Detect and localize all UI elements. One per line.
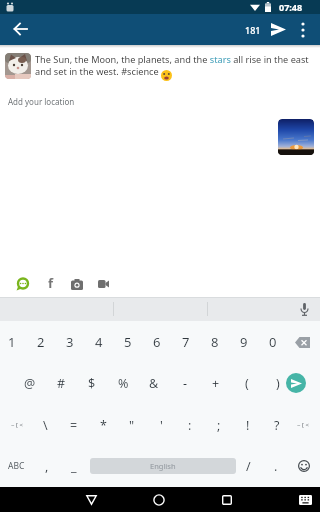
- staticText: ,: [45, 458, 49, 475]
- staticText: ABC: [8, 460, 25, 472]
- staticText: &: [149, 375, 159, 392]
- staticText: _: [71, 458, 77, 475]
- button[interactable]: ~ [ <: [2, 405, 32, 445]
- button[interactable]: [6, 15, 34, 43]
- button[interactable]: [291, 446, 317, 486]
- button[interactable]: [79, 487, 103, 512]
- staticText: =: [70, 417, 78, 434]
- button[interactable]: _: [62, 446, 86, 486]
- button[interactable]: 4: [85, 322, 113, 362]
- button[interactable]: [215, 487, 239, 512]
- staticText: ?: [274, 417, 280, 434]
- button[interactable]: ): [264, 363, 292, 403]
- button[interactable]: [147, 487, 171, 512]
- button[interactable]: 6: [143, 322, 171, 362]
- button[interactable]: 5: [114, 322, 142, 362]
- staticText: 1: [8, 333, 16, 351]
- staticText: -: [183, 375, 188, 392]
- button[interactable]: ABC: [1, 446, 31, 486]
- staticText: ~ [ <: [11, 421, 23, 429]
- button[interactable]: -: [171, 363, 199, 403]
- button[interactable]: #: [47, 363, 75, 403]
- staticText: 181: [245, 24, 261, 36]
- staticText: :: [188, 417, 192, 434]
- staticText: *: [100, 417, 107, 434]
- button[interactable]: ": [119, 405, 145, 445]
- button[interactable]: [288, 322, 316, 362]
- button[interactable]: \: [32, 405, 58, 445]
- button[interactable]: 7: [172, 322, 200, 362]
- button[interactable]: +: [202, 363, 230, 403]
- button[interactable]: ~ [ <: [288, 405, 318, 445]
- button[interactable]: [293, 487, 317, 512]
- staticText: 6: [153, 333, 161, 351]
- staticText: The Sun, the Moon, the planets, and the …: [35, 53, 320, 77]
- button[interactable]: [66, 274, 87, 295]
- button[interactable]: %: [109, 363, 137, 403]
- button[interactable]: ,: [35, 446, 59, 486]
- staticText: .: [274, 458, 278, 475]
- staticText: f: [48, 274, 54, 292]
- button[interactable]: 0: [259, 322, 287, 362]
- button[interactable]: [5, 53, 31, 79]
- staticText: ~ [ <: [297, 421, 309, 429]
- button[interactable]: 1: [0, 322, 26, 362]
- button[interactable]: !: [235, 405, 261, 445]
- staticText: 2: [37, 333, 45, 351]
- button[interactable]: f: [42, 274, 60, 292]
- button[interactable]: 3: [56, 322, 84, 362]
- staticText: +: [212, 375, 220, 392]
- staticText: 9: [240, 333, 248, 351]
- button[interactable]: &: [140, 363, 168, 403]
- button[interactable]: [281, 368, 311, 398]
- button[interactable]: ;: [206, 405, 232, 445]
- staticText: (: [245, 375, 249, 392]
- staticText: ): [276, 375, 280, 392]
- staticText: #: [57, 375, 66, 392]
- staticText: 4: [95, 333, 103, 351]
- button[interactable]: =: [61, 405, 87, 445]
- button[interactable]: ?: [264, 405, 290, 445]
- button[interactable]: $: [78, 363, 106, 403]
- button[interactable]: :: [177, 405, 203, 445]
- staticText: !: [246, 417, 250, 434]
- staticText: English: [150, 461, 176, 471]
- button[interactable]: (: [233, 363, 261, 403]
- button[interactable]: *: [90, 405, 116, 445]
- button[interactable]: [292, 17, 314, 42]
- button[interactable]: [93, 274, 113, 294]
- button[interactable]: [12, 274, 32, 294]
- button[interactable]: 8: [201, 322, 229, 362]
- staticText: ': [160, 417, 163, 434]
- button[interactable]: @: [16, 363, 44, 403]
- staticText: 0: [269, 333, 277, 351]
- staticText: %: [118, 375, 129, 392]
- staticText: 5: [124, 333, 132, 351]
- staticText: Add your location: [8, 96, 75, 107]
- staticText: ": [129, 417, 135, 434]
- button[interactable]: /: [236, 446, 260, 486]
- button[interactable]: [278, 119, 314, 155]
- button[interactable]: .: [264, 446, 288, 486]
- staticText: 3: [66, 333, 74, 351]
- staticText: /: [246, 458, 251, 475]
- button[interactable]: 2: [27, 322, 55, 362]
- button[interactable]: ': [148, 405, 174, 445]
- button[interactable]: [292, 297, 316, 321]
- staticText: @: [24, 375, 36, 392]
- staticText: 8: [211, 333, 219, 351]
- staticText: 7: [182, 333, 190, 351]
- staticText: $: [88, 375, 96, 392]
- button[interactable]: Add your location: [0, 92, 120, 110]
- button[interactable]: English: [90, 458, 236, 474]
- staticText: ;: [217, 417, 221, 434]
- staticText: 07:48: [279, 1, 303, 13]
- staticText: \: [43, 417, 48, 434]
- button[interactable]: [266, 17, 291, 42]
- button[interactable]: 9: [230, 322, 258, 362]
